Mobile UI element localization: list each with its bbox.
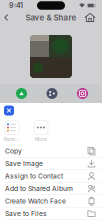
staticText: 9:41	[9, 1, 23, 10]
button[interactable]: Shortcuts	[4, 105, 14, 115]
button[interactable]: Share target	[46, 88, 57, 99]
button[interactable]: Share target	[16, 88, 27, 99]
staticText: More	[35, 136, 47, 142]
button[interactable]: Home	[83, 11, 97, 24]
button[interactable]: Copy	[0, 145, 102, 157]
button[interactable]: Reminders	[4, 120, 20, 142]
button[interactable]: Create Watch Face	[0, 195, 102, 207]
button[interactable]: Save to Files	[0, 207, 102, 220]
staticText: Add to Shared Album	[5, 184, 73, 193]
staticText: Copy	[5, 147, 22, 155]
button[interactable]: Save Image	[0, 157, 102, 170]
button[interactable]: Share target	[77, 88, 88, 99]
button[interactable]: Add to Shared Album	[0, 182, 102, 195]
staticText: Save Image	[5, 159, 43, 168]
staticText: Create Watch Face	[5, 197, 66, 205]
button[interactable]: Assign to Contact	[0, 170, 102, 182]
button[interactable]: Back	[0, 11, 14, 24]
staticText: Reminders	[4, 136, 20, 142]
button[interactable]: More	[33, 120, 49, 142]
staticText: Save to Files	[5, 209, 47, 218]
staticText: Save & Share	[25, 13, 76, 22]
staticText: Assign to Contact	[5, 172, 63, 180]
